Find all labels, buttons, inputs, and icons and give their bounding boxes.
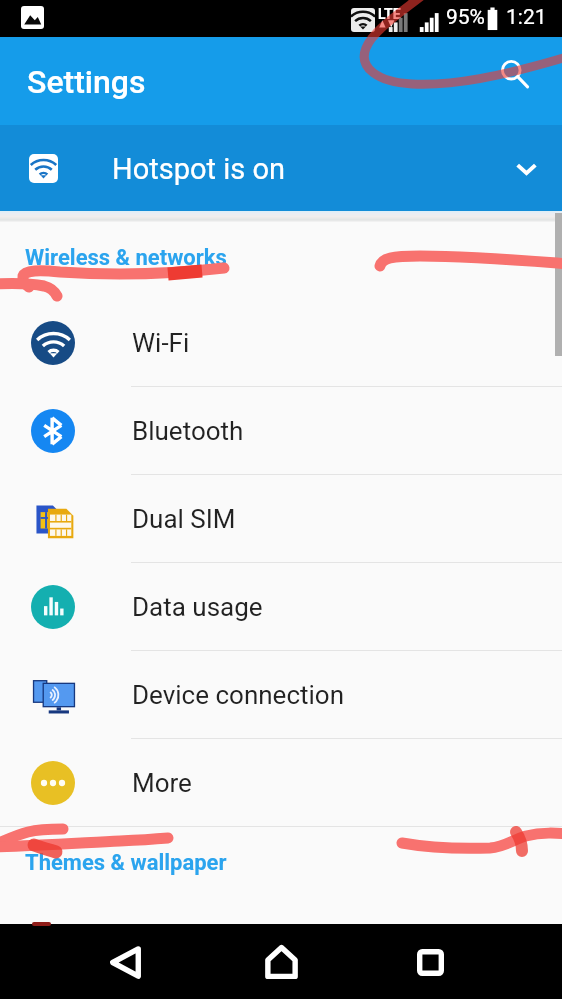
button[interactable]: Home bbox=[253, 934, 309, 990]
staticText: Settings bbox=[27, 63, 146, 101]
button[interactable]: Wi-Fi bbox=[0, 299, 562, 386]
staticText: Data usage bbox=[132, 592, 263, 622]
button[interactable]: Back bbox=[97, 934, 153, 990]
button[interactable]: Hotspot is on bbox=[0, 125, 562, 211]
button[interactable]: More bbox=[0, 739, 562, 826]
staticText: Themes & wallpaper bbox=[25, 850, 227, 876]
staticText: Device connection bbox=[132, 680, 345, 710]
button[interactable]: Device connection bbox=[0, 651, 562, 738]
staticText: Wi-Fi bbox=[132, 328, 190, 358]
staticText: Bluetooth bbox=[132, 416, 244, 446]
button[interactable]: Search bbox=[493, 53, 539, 99]
staticText: 95% bbox=[446, 5, 485, 30]
button[interactable]: Dual SIM bbox=[0, 475, 562, 562]
staticText: LTE bbox=[378, 6, 401, 22]
button[interactable]: Bluetooth bbox=[0, 387, 562, 474]
staticText: Hotspot is on bbox=[112, 152, 285, 186]
staticText: 1:21 bbox=[506, 5, 547, 30]
staticText: Dual SIM bbox=[132, 504, 236, 534]
button[interactable]: Recent apps bbox=[402, 934, 458, 990]
button[interactable]: Data usage bbox=[0, 563, 562, 650]
staticText: More bbox=[132, 768, 192, 798]
staticText: Wireless & networks bbox=[25, 245, 227, 271]
button[interactable]: Expand hotspot bbox=[506, 148, 546, 188]
